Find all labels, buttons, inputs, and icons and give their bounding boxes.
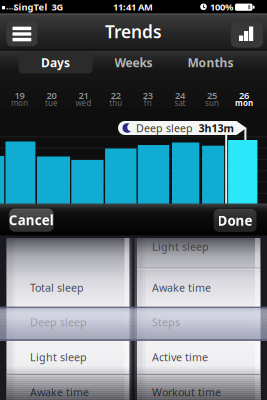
button[interactable]: Done [214, 209, 256, 232]
staticText: Active time [152, 350, 208, 364]
staticText: SingTel [13, 1, 47, 13]
staticText: thu [109, 98, 122, 108]
staticText: fri [144, 98, 152, 108]
staticText: Deep sleep [30, 315, 87, 329]
button[interactable]: 22 thu [101, 73, 131, 108]
button[interactable]: Cancel [9, 209, 54, 232]
button[interactable]: Chart options [231, 22, 263, 47]
staticText: Awake time [30, 385, 89, 399]
staticText: 11:41 AM [113, 1, 153, 13]
button[interactable]: 23 fri [133, 73, 163, 108]
button[interactable]: 25 sun [197, 73, 227, 108]
staticText: Months [187, 54, 233, 70]
staticText: Days [41, 54, 70, 70]
staticText: Trends [105, 20, 162, 43]
button[interactable]: 20 tue [36, 73, 66, 108]
button[interactable]: 26 mon [229, 73, 259, 108]
staticText: Light sleep [30, 350, 87, 364]
staticText: 3G [51, 1, 63, 13]
staticText: 3h13m [198, 121, 233, 135]
staticText: Deep sleep [136, 121, 193, 135]
staticText: sun [205, 98, 219, 108]
staticText: sat [174, 98, 185, 108]
staticText: 24 [175, 89, 185, 102]
staticText: 100% [210, 1, 233, 13]
staticText: Workout time [152, 385, 221, 399]
staticText: Awake time [152, 280, 211, 295]
staticText: wed [76, 98, 92, 108]
staticText: 21 [79, 89, 89, 102]
button[interactable]: Weeks [96, 51, 170, 74]
button[interactable]: Months [173, 51, 247, 74]
staticText: Done [218, 212, 253, 229]
button[interactable]: 19 mon [4, 73, 34, 108]
staticText: Cancel [9, 211, 54, 229]
staticText: 23 [143, 89, 153, 102]
staticText: Steps [152, 315, 180, 329]
button[interactable]: 21 wed [69, 73, 99, 108]
staticText: 25 [207, 89, 217, 102]
staticText: Weeks [114, 54, 152, 70]
button[interactable]: Days [18, 51, 92, 74]
staticText: 22 [111, 89, 121, 102]
button[interactable]: Menu [6, 21, 37, 46]
staticText: Total sleep [30, 280, 84, 295]
staticText: mon [235, 98, 253, 108]
button[interactable]: 24 sat [165, 73, 195, 108]
staticText: mon [11, 98, 28, 108]
staticText: Light sleep [152, 239, 209, 254]
staticText: tue [45, 98, 58, 108]
staticText: 26 [239, 89, 249, 102]
staticText: 19 [14, 89, 24, 102]
staticText: 20 [46, 89, 56, 102]
